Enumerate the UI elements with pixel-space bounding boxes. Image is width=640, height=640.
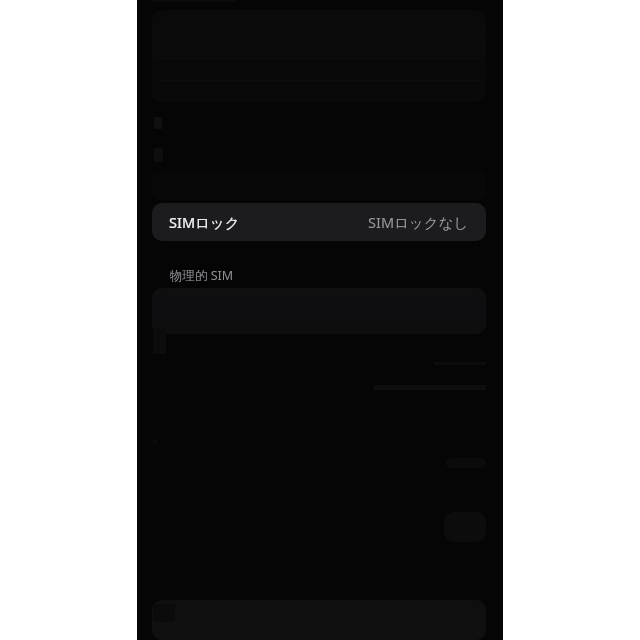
- button[interactable]: SIMロック: [152, 203, 486, 241]
- staticText: SIMロックなし: [368, 212, 469, 232]
- staticText: 物理的 SIM: [170, 267, 234, 284]
- staticText: SIMロック: [169, 212, 240, 232]
